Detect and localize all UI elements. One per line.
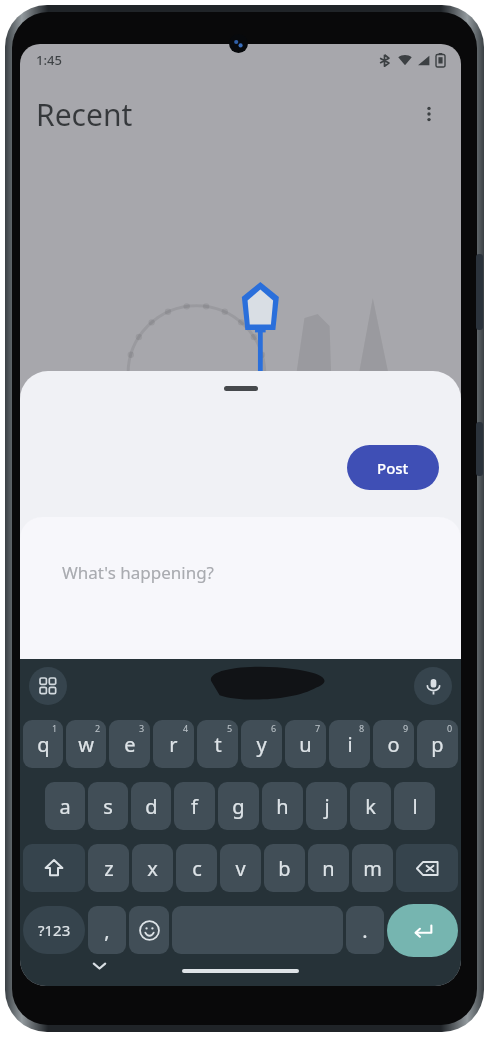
button[interactable]: Backspace: [396, 844, 458, 892]
button[interactable]: e: [109, 720, 150, 768]
staticText: w: [78, 731, 94, 758]
staticText: b: [278, 855, 291, 882]
staticText: i: [347, 731, 353, 758]
staticText: 4: [183, 722, 189, 734]
staticText: 7: [315, 722, 321, 734]
staticText: k: [365, 793, 376, 820]
staticText: n: [322, 855, 335, 882]
staticText: o: [387, 731, 400, 758]
button[interactable]: c: [176, 844, 217, 892]
staticText: 9: [403, 722, 409, 734]
staticText: 8: [359, 722, 365, 734]
staticText: 2: [95, 722, 101, 734]
staticText: t: [214, 731, 222, 758]
button[interactable]: u: [285, 720, 326, 768]
button[interactable]: p: [417, 720, 458, 768]
button[interactable]: ,: [88, 906, 126, 954]
staticText: Post: [377, 458, 409, 478]
staticText: g: [232, 793, 245, 820]
staticText: 0: [447, 722, 453, 734]
button[interactable]: b: [264, 844, 305, 892]
button[interactable]: y: [241, 720, 282, 768]
button[interactable]: Emoji: [129, 906, 169, 954]
staticText: What's happening?: [62, 561, 214, 584]
staticText: 3: [139, 722, 145, 734]
staticText: l: [412, 793, 418, 820]
staticText: .: [362, 917, 368, 944]
staticText: 1: [52, 722, 58, 734]
button[interactable]: v: [220, 844, 261, 892]
button[interactable]: l: [394, 782, 435, 830]
button[interactable]: t: [197, 720, 238, 768]
staticText: c: [192, 855, 202, 882]
staticText: 5: [227, 722, 233, 734]
staticText: m: [363, 855, 382, 882]
staticText: v: [235, 855, 246, 882]
staticText: d: [145, 793, 158, 820]
button[interactable]: w: [66, 720, 106, 768]
staticText: r: [169, 731, 178, 758]
button[interactable]: .: [346, 906, 384, 954]
button[interactable]: d: [131, 782, 171, 830]
staticText: Recent: [36, 94, 133, 135]
button[interactable]: s: [88, 782, 128, 830]
staticText: f: [191, 793, 198, 820]
button[interactable]: r: [153, 720, 194, 768]
staticText: x: [147, 855, 158, 882]
button[interactable]: n: [308, 844, 349, 892]
button[interactable]: z: [88, 844, 129, 892]
button[interactable]: q: [23, 720, 63, 768]
button[interactable]: Post: [347, 445, 439, 490]
button[interactable]: More options: [409, 94, 449, 134]
staticText: 6: [271, 722, 277, 734]
button[interactable]: i: [329, 720, 370, 768]
staticText: h: [276, 793, 289, 820]
button[interactable]: h: [262, 782, 303, 830]
button[interactable]: Switch input mode: [29, 667, 67, 705]
button[interactable]: m: [352, 844, 393, 892]
staticText: 1:45: [36, 51, 62, 69]
staticText: ,: [104, 917, 110, 944]
staticText: p: [431, 731, 444, 758]
staticText: ?123: [38, 920, 71, 940]
button[interactable]: g: [218, 782, 259, 830]
button[interactable]: ?123: [23, 906, 85, 954]
staticText: a: [59, 793, 71, 820]
button[interactable]: Shift: [23, 844, 85, 892]
staticText: e: [124, 731, 136, 758]
staticText: j: [324, 793, 330, 820]
button[interactable]: x: [132, 844, 173, 892]
staticText: u: [299, 731, 312, 758]
staticText: s: [103, 793, 113, 820]
button[interactable]: f: [174, 782, 215, 830]
button[interactable]: Voice input: [414, 667, 452, 705]
button[interactable]: a: [45, 782, 85, 830]
button[interactable]: Enter: [387, 904, 458, 957]
button[interactable]: k: [350, 782, 391, 830]
staticText: z: [104, 855, 114, 882]
button[interactable]: What's happening?: [20, 517, 461, 659]
staticText: y: [256, 731, 267, 758]
button[interactable]: j: [306, 782, 347, 830]
button[interactable]: Hide keyboard: [82, 953, 116, 978]
staticText: q: [37, 731, 50, 758]
button[interactable]: o: [373, 720, 414, 768]
